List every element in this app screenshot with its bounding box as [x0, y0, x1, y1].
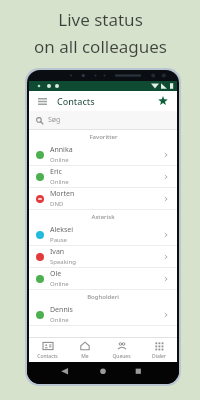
staticText: Online	[50, 178, 69, 186]
button[interactable]: Me	[66, 338, 103, 362]
button[interactable]: Open navigation menu	[35, 94, 49, 108]
staticText: Queues	[112, 353, 131, 360]
button[interactable]: Favorites	[155, 93, 171, 109]
staticText: Bogholderi	[87, 293, 119, 301]
staticText: Eric	[50, 167, 62, 177]
button[interactable]: Aleksei	[29, 224, 177, 246]
staticText: Online	[50, 316, 69, 324]
staticText: Dennis	[50, 305, 73, 315]
staticText: Aleksei	[50, 225, 74, 235]
button[interactable]: Dennis	[29, 304, 177, 326]
staticText: Ivan	[50, 247, 65, 257]
staticText: Asterisk	[91, 213, 115, 221]
button[interactable]: Ole	[29, 268, 177, 290]
button[interactable]: Queues	[103, 338, 140, 362]
staticText: DND	[50, 200, 64, 208]
staticText: Søg	[48, 115, 61, 125]
staticText: Favoritter	[89, 133, 118, 141]
staticText: Annika	[50, 145, 73, 155]
button[interactable]: Annika	[29, 144, 177, 166]
staticText: on all colleagues	[34, 35, 167, 58]
button[interactable]: Morten	[29, 188, 177, 210]
staticText: Online	[50, 156, 69, 164]
staticText: Live status	[58, 8, 143, 31]
staticText: Speaking	[50, 258, 76, 266]
button[interactable]: Søg	[29, 111, 177, 129]
staticText: Ole	[50, 269, 62, 279]
staticText: Pause	[50, 236, 67, 244]
button[interactable]: Dialer	[140, 338, 177, 362]
button[interactable]: Ivan	[29, 246, 177, 268]
button[interactable]: Contacts	[29, 338, 66, 362]
staticText: Me	[81, 353, 89, 360]
staticText: Morten	[50, 189, 75, 199]
staticText: Contacts	[37, 353, 58, 360]
staticText: Dialer	[152, 353, 166, 360]
staticText: Contacts	[57, 95, 95, 107]
staticText: Online	[50, 280, 69, 288]
button[interactable]: Eric	[29, 166, 177, 188]
